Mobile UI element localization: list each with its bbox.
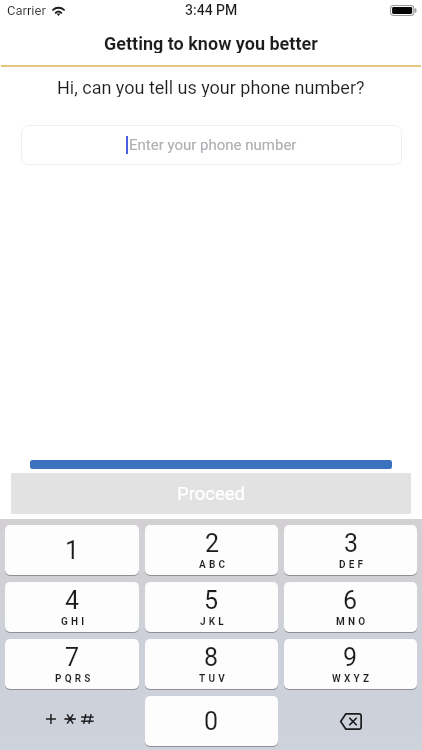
staticText: 0: [204, 707, 219, 736]
staticText: MNO: [336, 616, 369, 628]
staticText: DEF: [339, 559, 367, 571]
button[interactable]: 8: [145, 639, 278, 689]
staticText: Proceed: [177, 483, 246, 505]
staticText: Carrier: [7, 3, 46, 18]
staticText: TUV: [199, 673, 228, 685]
button[interactable]: 5: [145, 582, 278, 632]
staticText: JKL: [200, 616, 227, 628]
staticText: Getting to know you better: [104, 33, 318, 53]
staticText: 3: [344, 529, 359, 558]
staticText: Enter your phone number: [129, 136, 297, 154]
button[interactable]: 0: [145, 696, 278, 746]
button[interactable]: Backspace: [284, 696, 417, 746]
staticText: 9: [343, 643, 358, 672]
staticText: 4: [65, 586, 80, 615]
staticText: 7: [65, 643, 80, 672]
staticText: 5: [204, 586, 219, 615]
button[interactable]: 2: [145, 525, 278, 575]
button[interactable]: [5, 696, 139, 746]
button[interactable]: 6: [284, 582, 417, 632]
staticText: 1: [65, 536, 80, 565]
staticText: PQRS: [55, 673, 94, 685]
button[interactable]: 1: [5, 525, 139, 575]
staticText: 3:44 PM: [185, 2, 238, 18]
staticText: 2: [205, 529, 220, 558]
button[interactable]: Proceed: [11, 473, 411, 514]
staticText: 6: [343, 586, 358, 615]
button[interactable]: 7: [5, 639, 139, 689]
staticText: 8: [204, 643, 219, 672]
button[interactable]: Enter your phone number: [21, 125, 402, 165]
staticText: ABC: [199, 559, 229, 571]
button[interactable]: 3: [284, 525, 417, 575]
button[interactable]: 4: [5, 582, 139, 632]
staticText: GHI: [61, 616, 88, 628]
staticText: WXYZ: [332, 673, 373, 685]
button[interactable]: 9: [284, 639, 417, 689]
staticText: Hi, can you tell us your phone number?: [57, 77, 365, 97]
